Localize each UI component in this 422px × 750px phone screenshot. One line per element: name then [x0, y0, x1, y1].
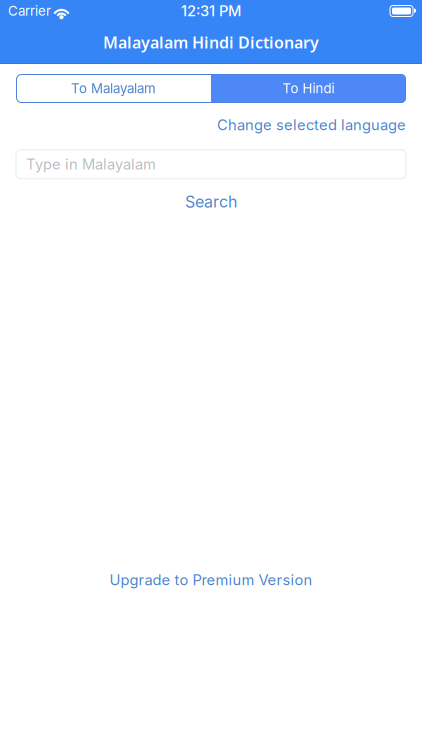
button[interactable]: Change selected language: [217, 116, 406, 134]
staticText: Change selected language: [217, 116, 406, 134]
button[interactable]: To Malayalam: [16, 74, 211, 103]
staticText: To Malayalam: [71, 80, 156, 96]
staticText: 12:31 PM: [181, 2, 241, 20]
staticText: Malayalam Hindi Dictionary: [103, 32, 319, 53]
staticText: Type in Malayalam: [26, 155, 156, 173]
staticText: To Hindi: [282, 80, 334, 96]
staticText: Carrier: [8, 3, 51, 19]
staticText: Upgrade to Premium Version: [109, 571, 312, 589]
button[interactable]: Type in Malayalam: [16, 150, 406, 179]
staticText: Search: [185, 192, 237, 211]
button[interactable]: To Hindi: [211, 74, 406, 103]
button[interactable]: Search: [0, 191, 422, 213]
button[interactable]: Upgrade to Premium Version: [0, 570, 422, 590]
